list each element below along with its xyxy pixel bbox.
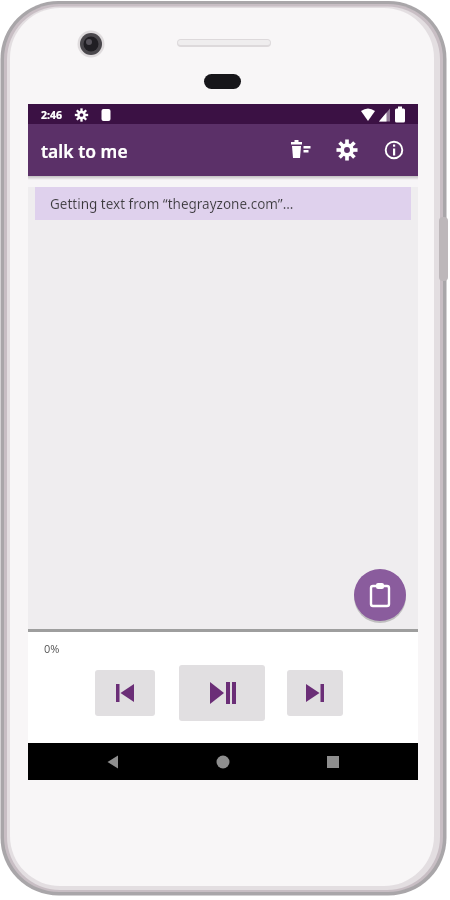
button[interactable] bbox=[281, 131, 319, 169]
button[interactable] bbox=[313, 743, 353, 780]
staticText: 2:46 bbox=[41, 108, 62, 122]
staticText: 0% bbox=[44, 641, 60, 656]
staticText: Getting text from “thegrayzone.com”... bbox=[50, 195, 294, 213]
button[interactable] bbox=[179, 665, 265, 721]
button[interactable] bbox=[93, 743, 133, 780]
button[interactable] bbox=[95, 670, 155, 716]
staticText: talk to me bbox=[41, 139, 128, 163]
button[interactable] bbox=[203, 743, 243, 780]
button[interactable] bbox=[375, 131, 413, 169]
button[interactable] bbox=[354, 569, 406, 621]
button[interactable] bbox=[287, 670, 343, 716]
button[interactable] bbox=[328, 131, 366, 169]
